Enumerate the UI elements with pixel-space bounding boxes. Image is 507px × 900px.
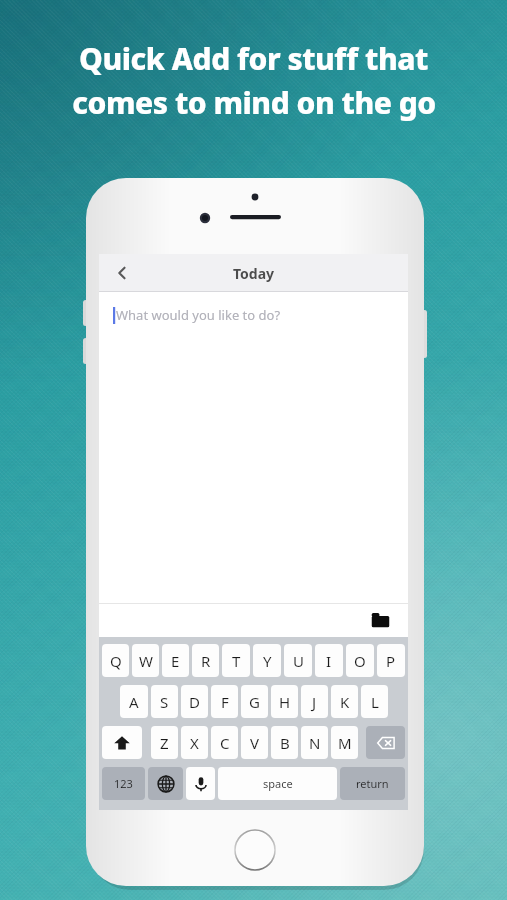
- staticText: Q: [110, 651, 122, 671]
- staticText: M: [338, 733, 352, 753]
- button[interactable]: Dictate: [186, 767, 215, 800]
- button[interactable]: F: [211, 685, 238, 718]
- button[interactable]: Backspace: [366, 726, 405, 759]
- button[interactable]: Back: [105, 256, 139, 290]
- button[interactable]: B: [271, 726, 298, 759]
- staticText: I: [326, 651, 332, 671]
- button[interactable]: Q: [102, 644, 129, 677]
- button[interactable]: P: [377, 644, 405, 677]
- staticText: N: [309, 733, 321, 753]
- staticText: 123: [114, 776, 133, 791]
- staticText: A: [129, 692, 139, 712]
- staticText: E: [171, 651, 180, 671]
- staticText: F: [221, 692, 229, 712]
- staticText: U: [293, 651, 304, 671]
- button[interactable]: D: [181, 685, 208, 718]
- button[interactable]: E: [162, 644, 189, 677]
- button[interactable]: Z: [151, 726, 178, 759]
- staticText: W: [139, 651, 153, 671]
- button[interactable]: R: [192, 644, 219, 677]
- button[interactable]: T: [222, 644, 250, 677]
- button[interactable]: C: [211, 726, 238, 759]
- button[interactable]: space: [218, 767, 337, 800]
- other: Home: [233, 828, 277, 872]
- button[interactable]: Y: [253, 644, 281, 677]
- button[interactable]: S: [151, 685, 178, 718]
- button[interactable]: V: [241, 726, 268, 759]
- staticText: X: [190, 733, 199, 753]
- staticText: B: [280, 733, 290, 753]
- staticText: J: [312, 692, 317, 712]
- button[interactable]: What would you like to do?: [99, 292, 408, 603]
- staticText: C: [220, 733, 230, 753]
- staticText: P: [386, 651, 396, 671]
- staticText: Z: [160, 733, 169, 753]
- staticText: comes to mind on the go: [72, 82, 436, 123]
- staticText: What would you like to do?: [116, 306, 281, 324]
- staticText: space: [263, 776, 293, 791]
- button[interactable]: A: [120, 685, 148, 718]
- button[interactable]: J: [301, 685, 328, 718]
- staticText: D: [189, 692, 200, 712]
- button[interactable]: return: [340, 767, 405, 800]
- button[interactable]: O: [346, 644, 374, 677]
- staticText: Today: [233, 264, 275, 283]
- staticText: return: [356, 776, 389, 791]
- button[interactable]: I: [315, 644, 343, 677]
- staticText: G: [249, 692, 260, 712]
- staticText: H: [279, 692, 291, 712]
- button[interactable]: G: [241, 685, 268, 718]
- staticText: V: [250, 733, 260, 753]
- button[interactable]: K: [331, 685, 358, 718]
- button[interactable]: H: [271, 685, 298, 718]
- button[interactable]: W: [132, 644, 159, 677]
- staticText: K: [340, 692, 350, 712]
- button[interactable]: U: [284, 644, 312, 677]
- staticText: T: [232, 651, 241, 671]
- button[interactable]: M: [331, 726, 358, 759]
- staticText: L: [371, 692, 379, 712]
- button[interactable]: Choose folder: [366, 606, 394, 634]
- staticText: S: [160, 692, 169, 712]
- button[interactable]: N: [301, 726, 328, 759]
- button[interactable]: L: [361, 685, 388, 718]
- staticText: Y: [263, 651, 272, 671]
- staticText: Quick Add for stuff that: [79, 38, 428, 79]
- button[interactable]: 123: [102, 767, 145, 800]
- button[interactable]: Shift: [102, 726, 142, 759]
- staticText: R: [201, 651, 211, 671]
- button[interactable]: X: [181, 726, 208, 759]
- button[interactable]: Switch keyboard: [148, 767, 183, 800]
- staticText: O: [354, 651, 366, 671]
